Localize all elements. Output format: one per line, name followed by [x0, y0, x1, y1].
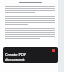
staticText: Create PDF document: [5, 52, 27, 62]
button[interactable]: Create PDF document: [3, 47, 58, 63]
